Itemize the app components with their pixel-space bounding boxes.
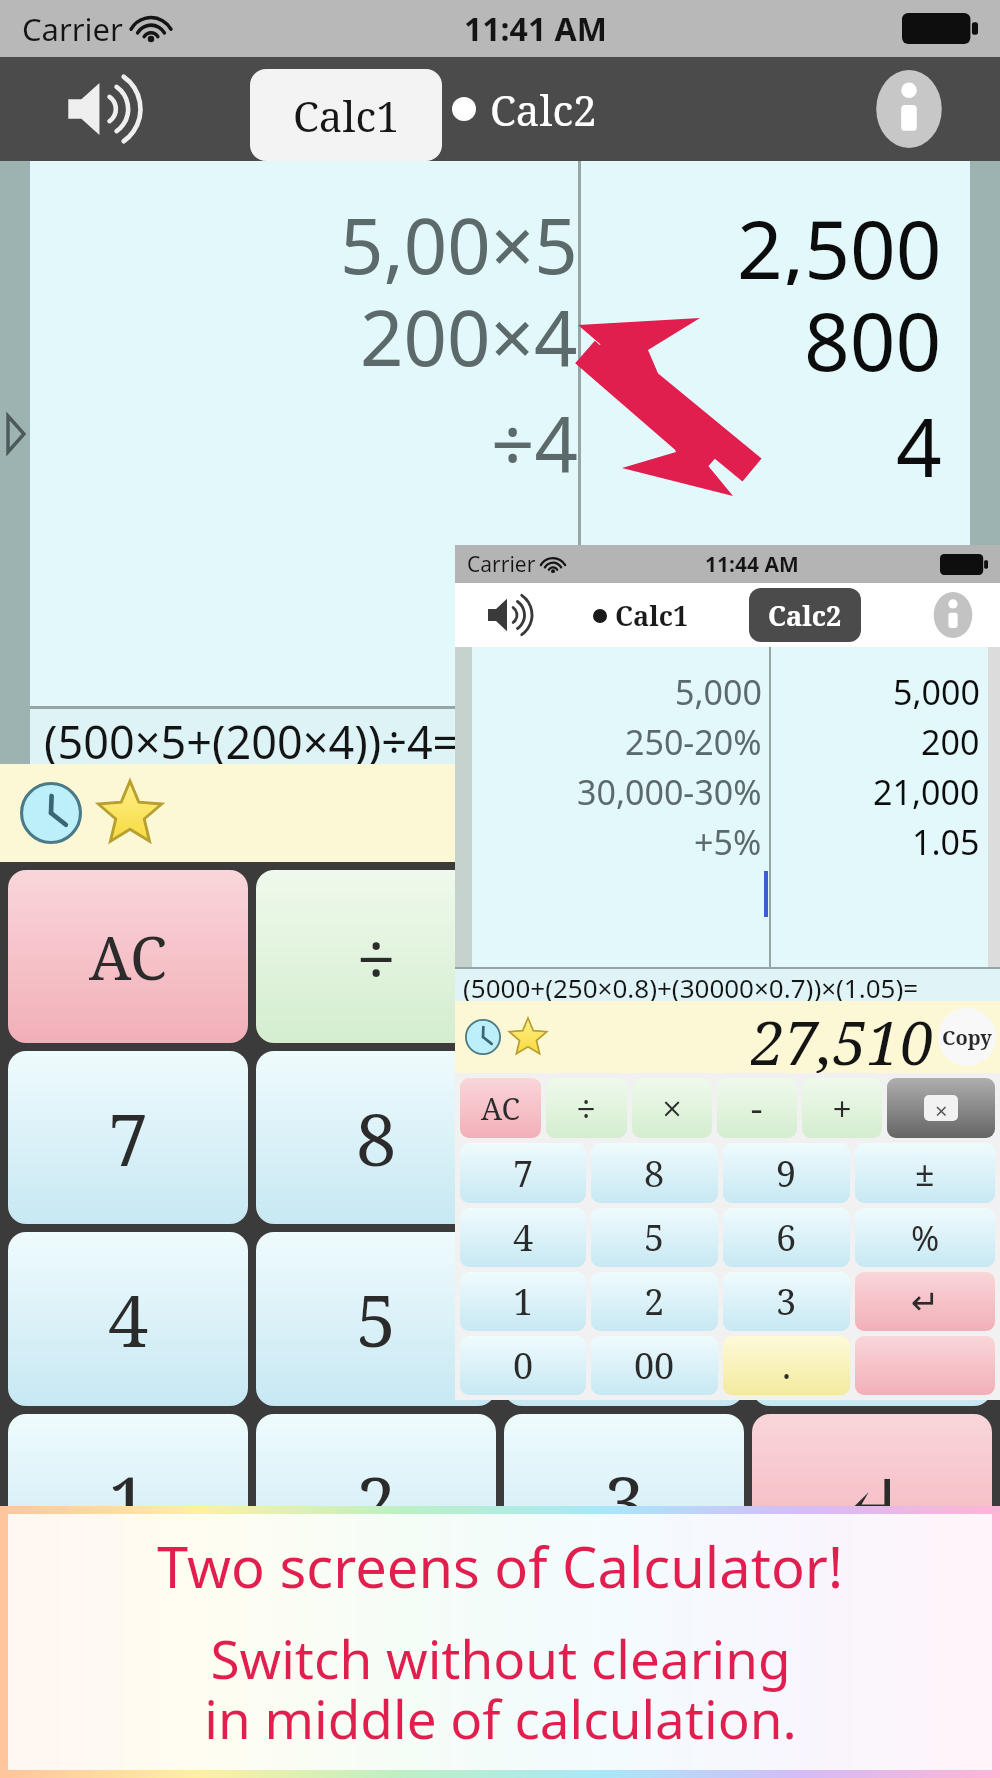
staticText: 00 — [634, 1341, 675, 1390]
staticText: ± — [915, 1150, 935, 1196]
staticText: . — [615, 1634, 633, 1732]
staticText: 9 — [776, 1149, 797, 1198]
button[interactable]: ↵ — [855, 1272, 995, 1331]
button[interactable]: History — [20, 782, 82, 844]
button[interactable]: 1 — [8, 1414, 248, 1588]
button[interactable]: ↵ — [752, 1596, 992, 1770]
button[interactable]: 4 — [460, 1208, 586, 1267]
button[interactable]: 00 — [256, 1596, 496, 1770]
button[interactable]: ± — [855, 1143, 995, 1203]
staticText: 1 — [108, 1452, 149, 1550]
staticText: × — [604, 908, 645, 1006]
button[interactable]: Info — [930, 592, 976, 638]
button[interactable]: % — [752, 1232, 992, 1406]
staticText: 3 — [776, 1277, 797, 1326]
button[interactable]: 8 — [256, 1051, 496, 1224]
button[interactable]: 8 — [591, 1143, 718, 1203]
staticText: 6 — [776, 1213, 797, 1262]
staticText: 4 — [108, 1270, 149, 1368]
button[interactable]: ÷ — [256, 870, 496, 1043]
button[interactable]: 2 — [256, 1414, 496, 1588]
button[interactable]: 0 — [8, 1596, 248, 1770]
staticText: 21,000 — [873, 769, 980, 815]
staticText: 5 — [356, 1270, 397, 1368]
staticText: 9 — [604, 1089, 645, 1187]
button[interactable]: 3 — [723, 1272, 850, 1331]
button[interactable]: 0 — [460, 1336, 586, 1395]
button[interactable]: 1 — [460, 1272, 586, 1331]
button[interactable]: ± — [752, 1051, 992, 1224]
staticText: 2 — [356, 1452, 397, 1550]
button[interactable]: Sound — [58, 74, 154, 144]
staticText: . — [782, 1341, 791, 1390]
button[interactable]: 6 — [504, 1232, 744, 1406]
staticText: - — [751, 1084, 763, 1133]
button[interactable] — [855, 1336, 995, 1395]
button[interactable]: AC — [460, 1078, 541, 1138]
staticText: 27,510 — [751, 1001, 934, 1073]
staticText: 30,000-30% — [577, 769, 762, 815]
button[interactable]: . — [723, 1336, 850, 1395]
button[interactable]: + — [802, 1078, 882, 1138]
staticText: ÷ — [576, 1084, 597, 1133]
staticText: 11:41 AM — [464, 7, 607, 51]
button[interactable]: - — [752, 870, 992, 1043]
staticText: 200×4 — [360, 285, 578, 377]
button[interactable]: 2 — [591, 1272, 718, 1331]
button[interactable]: ↵ — [752, 1414, 992, 1588]
staticText: 800 — [804, 285, 942, 377]
button[interactable]: × — [632, 1078, 712, 1138]
staticText: Carrier — [22, 8, 123, 50]
staticText: 00 — [336, 1634, 417, 1732]
staticText: × — [935, 1095, 948, 1121]
button[interactable]: 7 — [8, 1051, 248, 1224]
staticText: - — [861, 908, 884, 1006]
button[interactable]: ÷ — [546, 1078, 627, 1138]
staticText: (5000+(250×0.8)+(30000×0.7))×(1.05)= — [463, 970, 919, 1001]
staticText: ÷4 — [491, 391, 578, 479]
staticText: ↵ — [911, 1282, 940, 1322]
button[interactable]: Calc1 — [250, 69, 442, 161]
staticText: 4 — [896, 391, 942, 479]
button[interactable]: . — [504, 1596, 744, 1770]
button[interactable]: Sound — [483, 593, 539, 637]
button[interactable]: Info — [870, 70, 948, 148]
button[interactable]: - — [717, 1078, 797, 1138]
button[interactable]: 5 — [591, 1208, 718, 1267]
button[interactable]: 6 — [723, 1208, 850, 1267]
staticText: 5,000 — [893, 669, 980, 715]
button[interactable]: Favorite — [509, 1018, 547, 1056]
button[interactable]: Calc2 — [452, 73, 597, 145]
staticText: % — [911, 1215, 940, 1261]
button[interactable]: Calc1 — [593, 597, 689, 634]
staticText: 3 — [604, 1452, 645, 1550]
button[interactable]: Copy — [938, 1008, 996, 1066]
staticText: AC — [481, 1088, 520, 1129]
button[interactable]: × — [504, 870, 744, 1043]
button[interactable]: 5 — [256, 1232, 496, 1406]
button[interactable]: 4 — [8, 1232, 248, 1406]
button[interactable]: 7 — [460, 1143, 586, 1203]
button[interactable]: × — [887, 1078, 995, 1138]
button[interactable]: % — [855, 1208, 995, 1267]
staticText: 5,000 — [675, 669, 762, 715]
staticText: 1 — [513, 1277, 534, 1326]
button[interactable]: 3 — [504, 1414, 744, 1588]
staticText: × — [662, 1084, 683, 1133]
button[interactable]: 9 — [723, 1143, 850, 1203]
button[interactable]: History — [465, 1019, 501, 1055]
staticText: 2,500 — [737, 193, 942, 285]
staticText: Switch without clearing in middle of cal… — [204, 1622, 797, 1755]
staticText: 7 — [108, 1089, 149, 1187]
button[interactable]: Calc2 — [749, 588, 861, 642]
staticText: Copy — [942, 1024, 992, 1051]
staticText: Carrier — [467, 550, 536, 579]
button[interactable]: Favorite — [98, 781, 162, 845]
button[interactable]: 9 — [504, 1051, 744, 1224]
staticText: Two screens of Calculator! — [157, 1528, 843, 1604]
button[interactable]: AC — [8, 870, 248, 1043]
button[interactable]: 00 — [591, 1336, 718, 1395]
staticText: (500×5+(200×4))÷4= — [44, 711, 459, 764]
